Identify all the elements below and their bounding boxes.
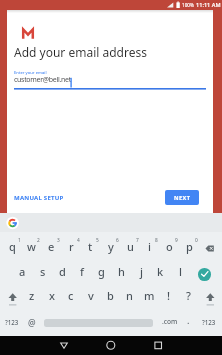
staticText: q <box>9 239 16 254</box>
staticText: p <box>186 239 193 254</box>
staticText: 6 <box>116 237 119 243</box>
button[interactable]: o <box>160 235 179 257</box>
staticText: w <box>27 239 36 254</box>
button[interactable] <box>54 338 74 353</box>
button[interactable]: f <box>72 260 91 282</box>
staticText: l <box>179 264 182 279</box>
staticText: m <box>144 288 155 303</box>
button[interactable]: z <box>22 284 41 306</box>
button[interactable]: u <box>121 235 140 257</box>
staticText: u <box>127 239 134 254</box>
button[interactable] <box>198 268 211 281</box>
staticText: j <box>140 264 143 279</box>
staticText: 3 <box>57 237 60 243</box>
staticText: ?123 <box>5 318 19 326</box>
staticText: Add your email address <box>14 44 147 60</box>
button[interactable]: y <box>101 235 120 257</box>
button[interactable] <box>203 290 218 305</box>
button[interactable]: q <box>3 235 22 257</box>
staticText: NEXT <box>174 194 191 202</box>
button[interactable] <box>101 338 121 353</box>
staticText: b <box>107 288 114 303</box>
staticText: MANUAL SETUP <box>14 194 64 202</box>
button[interactable]: n <box>120 284 139 306</box>
button[interactable]: j <box>132 260 151 282</box>
button[interactable]: h <box>112 260 131 282</box>
button[interactable]: . <box>179 309 198 331</box>
button[interactable]: .com <box>159 310 181 332</box>
staticText: a <box>19 264 26 279</box>
staticText: 2 <box>37 237 40 243</box>
button[interactable]: c <box>61 284 80 306</box>
button[interactable]: x <box>42 284 61 306</box>
staticText: x <box>49 288 55 303</box>
button[interactable]: p <box>180 235 199 257</box>
staticText: r <box>69 239 74 254</box>
button[interactable]: NEXT <box>165 190 199 205</box>
button[interactable]: a <box>13 260 32 282</box>
button[interactable]: MANUAL SETUP <box>10 192 68 204</box>
button[interactable]: ?123 <box>1 311 23 333</box>
staticText: f <box>80 264 84 279</box>
button[interactable]: ?123 <box>198 311 220 333</box>
staticText: 7 <box>136 237 139 243</box>
staticText: . <box>187 314 190 326</box>
button[interactable]: r <box>62 235 81 257</box>
staticText: 5 <box>96 237 99 243</box>
staticText: v <box>88 288 94 303</box>
button[interactable]: t <box>81 235 100 257</box>
button[interactable]: s <box>33 260 52 282</box>
button[interactable] <box>148 338 168 353</box>
staticText: 4 <box>77 237 80 243</box>
button[interactable]: m <box>140 284 159 306</box>
staticText: z <box>29 288 35 303</box>
button[interactable] <box>5 290 20 305</box>
button[interactable]: customer@bell.net <box>14 75 71 85</box>
staticText: 9 <box>175 237 178 243</box>
button[interactable]: @ <box>22 312 41 334</box>
staticText: ?123 <box>202 318 216 326</box>
staticText: c <box>68 288 74 303</box>
staticText: @ <box>28 317 36 329</box>
button[interactable]: g <box>92 260 111 282</box>
button[interactable]: i <box>140 235 159 257</box>
button[interactable]: l <box>171 260 190 282</box>
staticText: ! <box>167 288 171 303</box>
button[interactable]: b <box>101 284 120 306</box>
staticText: 8 <box>155 237 158 243</box>
staticText: 100% <box>182 2 194 8</box>
button[interactable] <box>6 217 19 230</box>
staticText: t <box>88 239 93 254</box>
staticText: 11:11 AM <box>196 1 221 9</box>
staticText: s <box>40 264 46 279</box>
staticText: k <box>157 264 164 279</box>
staticText: d <box>59 264 66 279</box>
button[interactable]: d <box>53 260 72 282</box>
staticText: o <box>166 239 173 254</box>
staticText: n <box>126 288 133 303</box>
staticText: e <box>48 239 55 254</box>
staticText: 0 <box>195 237 198 243</box>
button[interactable]: v <box>81 284 100 306</box>
button[interactable]: w <box>22 235 41 257</box>
staticText: h <box>118 264 125 279</box>
staticText: g <box>98 264 105 279</box>
staticText: .com <box>162 317 178 326</box>
button[interactable]: k <box>151 260 170 282</box>
staticText: ? <box>186 288 191 303</box>
button[interactable] <box>202 240 218 255</box>
button[interactable]: ! <box>159 284 178 306</box>
staticText: 1 <box>18 237 21 243</box>
staticText: i <box>148 239 151 254</box>
staticText: y <box>108 239 114 254</box>
button[interactable]: ? <box>179 284 198 306</box>
button[interactable]: e <box>42 235 61 257</box>
staticText: Enter your email <box>14 70 47 76</box>
